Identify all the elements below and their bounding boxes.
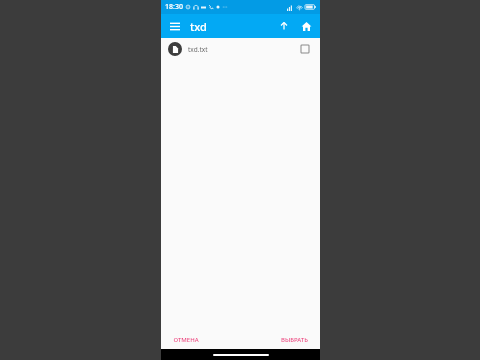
button[interactable]: txd.txt bbox=[161, 38, 320, 60]
button[interactable]: Up one level bbox=[275, 17, 293, 35]
button[interactable]: Open navigation menu bbox=[166, 17, 184, 35]
button[interactable]: ОТМЕНА bbox=[169, 333, 203, 347]
button[interactable]: Select txd.txt bbox=[297, 41, 313, 57]
staticText: txd bbox=[190, 19, 207, 34]
staticText: ВЫБРАТЬ bbox=[281, 336, 308, 344]
staticText: ОТМЕНА bbox=[173, 336, 199, 344]
staticText: 18:30 bbox=[165, 2, 183, 12]
button[interactable]: Home directory bbox=[297, 17, 315, 35]
button[interactable]: ВЫБРАТЬ bbox=[277, 333, 312, 347]
staticText: txd.txt bbox=[188, 45, 208, 54]
